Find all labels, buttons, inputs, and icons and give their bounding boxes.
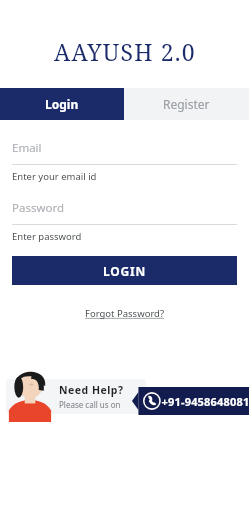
staticText: Forgot Password? (85, 307, 165, 320)
staticText: LOGIN (103, 263, 147, 279)
button[interactable]: Call +91-9458648081 (132, 387, 249, 415)
staticText: Password (12, 200, 65, 216)
staticText: AAYUSH 2.0 (54, 36, 196, 67)
button[interactable]: LOGIN (12, 256, 237, 285)
button[interactable]: Forgot Password? (83, 305, 167, 322)
staticText: +91-9458648081 (161, 394, 249, 409)
staticText: Login (45, 96, 79, 112)
staticText: Please call us on (59, 399, 121, 410)
staticText: Email (12, 140, 42, 156)
button[interactable]: Login (0, 88, 124, 120)
button[interactable]: Register (124, 88, 249, 120)
staticText: Enter your email id (12, 170, 97, 183)
staticText: Register (163, 96, 210, 112)
staticText: Need Help? (59, 383, 124, 397)
staticText: Enter password (12, 230, 82, 243)
